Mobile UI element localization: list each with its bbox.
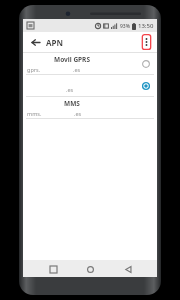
staticText: 93% [120,23,130,30]
staticText: Movil GPRS [27,55,117,64]
staticText: 13:50 [138,22,154,30]
button[interactable]: Back [120,261,136,277]
staticText: gprs. [27,66,41,73]
button[interactable]: Back [28,35,42,49]
staticText: APN [46,37,64,48]
staticText: MMS [27,99,117,108]
staticText: .es [66,86,74,93]
button[interactable]: .es [23,75,157,96]
button[interactable]: Movil GPRS [23,53,157,74]
staticText: .es [74,110,82,117]
button[interactable]: Home [82,261,98,277]
button[interactable]: Recents [45,261,61,277]
button[interactable]: MMS [23,97,157,118]
button[interactable]: More options [141,34,152,50]
staticText: mms. [27,110,42,117]
staticText: .es [73,66,81,73]
